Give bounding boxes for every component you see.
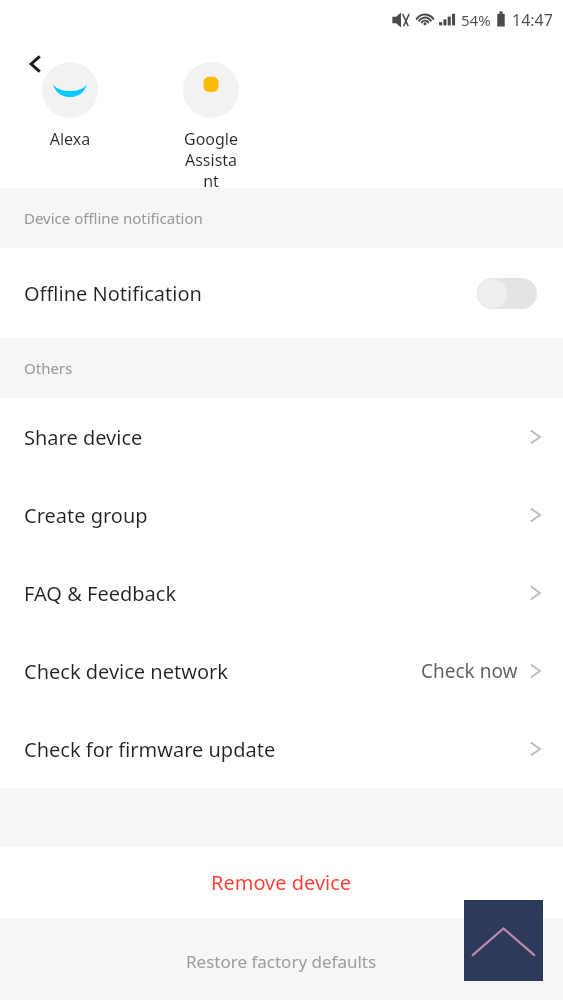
staticText: FAQ & Feedback	[24, 580, 177, 607]
staticText: Check now	[421, 658, 518, 684]
button[interactable]: Alexa	[42, 88, 98, 188]
button[interactable]: Check for firmware update	[0, 710, 563, 788]
button[interactable]: Restore factory defaults	[0, 918, 563, 1000]
staticText: 54%	[461, 10, 491, 30]
staticText: Restore factory defaults	[186, 950, 377, 973]
staticText: Google Assistant	[183, 128, 239, 192]
staticText: Remove device	[211, 869, 352, 896]
staticText: Check for firmware update	[24, 736, 276, 763]
button[interactable]: Google Assistant	[183, 88, 239, 188]
button[interactable]: FAQ & Feedback	[0, 554, 563, 632]
staticText: 14:47	[512, 9, 553, 31]
staticText: Others	[24, 358, 73, 378]
button[interactable]: Offline Notification	[0, 248, 563, 338]
button[interactable]: Back	[14, 42, 58, 86]
staticText: Offline Notification	[24, 280, 202, 307]
staticText: Device offline notification	[24, 208, 203, 228]
button[interactable]: Check device network	[0, 632, 563, 710]
staticText: Alexa	[42, 128, 98, 150]
staticText: Check device network	[24, 658, 228, 685]
button[interactable]: Remove device	[0, 847, 563, 918]
staticText: Share device	[24, 424, 143, 451]
button[interactable]: Create group	[0, 476, 563, 554]
staticText: Create group	[24, 502, 148, 529]
button[interactable]: Share device	[0, 398, 563, 476]
